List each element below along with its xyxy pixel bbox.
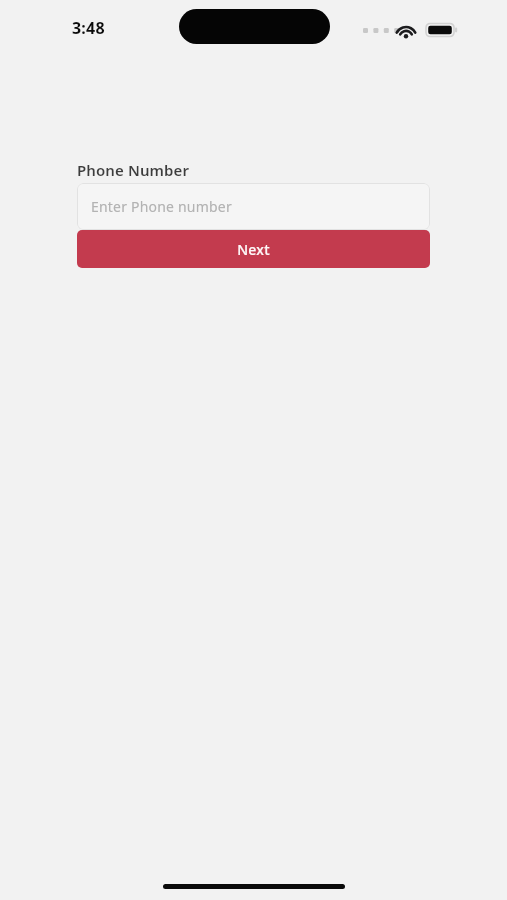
staticText: Phone Number — [77, 160, 190, 180]
staticText: Next — [237, 240, 270, 259]
button[interactable]: Enter Phone number — [77, 183, 430, 230]
staticText: 3:48 — [72, 17, 105, 39]
button[interactable]: Next — [77, 230, 430, 268]
staticText: Enter Phone number — [91, 197, 232, 216]
